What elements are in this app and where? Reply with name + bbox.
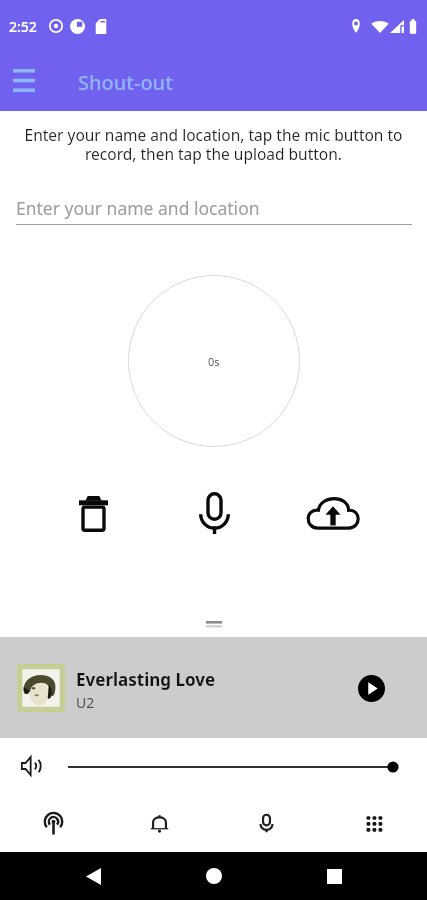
staticText: U2 [76, 693, 95, 712]
button[interactable]: Record [187, 489, 235, 537]
button[interactable]: Cast [0, 794, 106, 852]
staticText: 0s [208, 354, 220, 369]
button[interactable]: Back [78, 861, 108, 891]
staticText: Shout-out [78, 69, 173, 96]
staticText: Everlasting Love [76, 668, 216, 691]
button[interactable]: Delete recording [69, 489, 117, 537]
staticText: Enter your name and location [16, 196, 260, 220]
button[interactable]: Microphone [213, 794, 320, 852]
button[interactable]: Open navigation menu [0, 58, 48, 106]
staticText: 2:52 [9, 17, 37, 36]
button[interactable]: Play [354, 671, 388, 705]
button[interactable]: Recent apps [319, 861, 349, 891]
button[interactable]: Home [199, 861, 229, 891]
staticText: Enter your name and location, tap the mi… [18, 124, 409, 164]
button[interactable]: Upload [306, 487, 360, 539]
button[interactable]: Apps [320, 794, 427, 852]
button[interactable]: Notifications [106, 794, 213, 852]
